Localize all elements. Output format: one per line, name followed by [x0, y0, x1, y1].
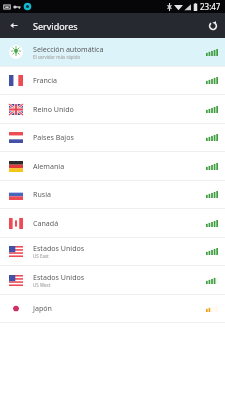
staticText: Servidores	[33, 20, 78, 32]
button[interactable]: Francia	[0, 67, 225, 95]
staticText: Países Bajos	[33, 132, 74, 142]
button[interactable]: Japón	[0, 295, 225, 323]
button[interactable]: Estados Unidos	[0, 266, 225, 295]
staticText: El servidor más rápido	[33, 54, 81, 60]
staticText: US West	[33, 282, 51, 288]
staticText: US East	[33, 253, 49, 259]
staticText: Estados Unidos	[33, 243, 85, 253]
staticText: Japón	[33, 303, 52, 313]
staticText: Selección automática	[33, 44, 104, 54]
button[interactable]: Estados Unidos	[0, 238, 225, 266]
button[interactable]: Países Bajos	[0, 124, 225, 152]
button[interactable]: Canadá	[0, 209, 225, 238]
staticText: Francia	[33, 75, 58, 85]
staticText: Reino Unido	[33, 104, 74, 114]
button[interactable]: Rusia	[0, 181, 225, 209]
staticText: Rusia	[33, 189, 52, 199]
staticText: Alemania	[33, 161, 65, 171]
button[interactable]: Alemania	[0, 152, 225, 181]
staticText: Canadá	[33, 218, 59, 228]
button[interactable]: Selección automática	[0, 38, 225, 67]
staticText: 23:47	[200, 1, 221, 12]
button[interactable]: Back	[0, 13, 28, 38]
staticText: Estados Unidos	[33, 272, 85, 282]
button[interactable]: Reino Unido	[0, 95, 225, 124]
button[interactable]: Refresh	[200, 13, 225, 38]
